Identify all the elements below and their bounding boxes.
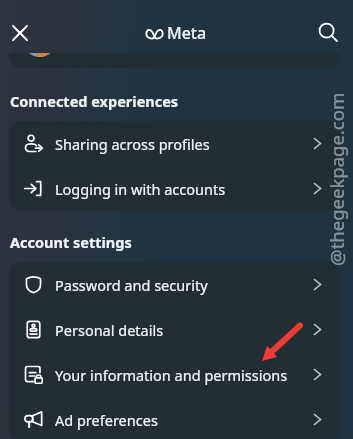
button[interactable]: Your information and permissions bbox=[9, 352, 340, 397]
button[interactable]: Ad preferences bbox=[9, 397, 340, 439]
button[interactable]: Sharing across profiles bbox=[9, 121, 340, 166]
staticText: Password and security bbox=[55, 275, 208, 295]
button[interactable]: Password and security bbox=[9, 262, 340, 307]
staticText: Sharing across profiles bbox=[55, 134, 210, 154]
staticText: Ad preferences bbox=[55, 410, 158, 430]
staticText: Personal details bbox=[55, 320, 164, 340]
staticText: Meta bbox=[167, 22, 207, 44]
staticText: Your information and permissions bbox=[55, 365, 288, 385]
staticText: Logging in with accounts bbox=[55, 179, 226, 199]
button[interactable]: Logging in with accounts bbox=[9, 166, 340, 211]
staticText: @thegeekpage.com bbox=[324, 92, 348, 266]
staticText: Account settings bbox=[10, 232, 132, 252]
button[interactable]: Close bbox=[1, 14, 38, 51]
button[interactable]: Personal details bbox=[9, 307, 340, 352]
staticText: Connected experiences bbox=[10, 91, 179, 111]
button[interactable]: Search bbox=[310, 14, 347, 51]
